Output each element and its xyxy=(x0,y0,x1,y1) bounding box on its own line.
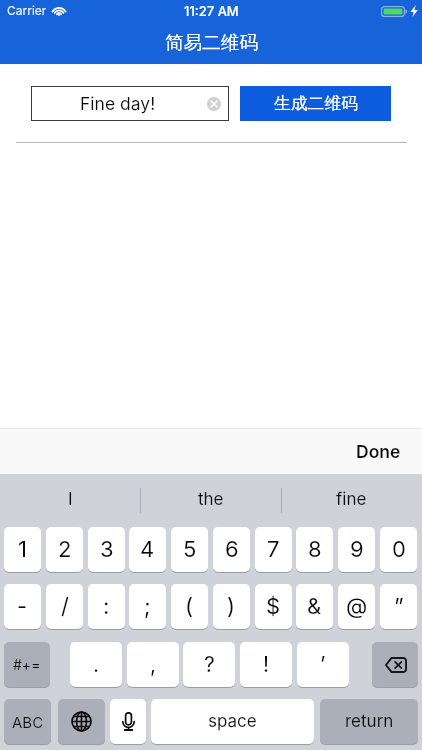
button[interactable]: return xyxy=(320,699,418,745)
button[interactable]: ! xyxy=(240,642,292,688)
button[interactable]: space xyxy=(151,699,314,745)
staticText: 2 xyxy=(58,536,72,563)
button[interactable]: fine xyxy=(281,474,422,527)
staticText: ABC xyxy=(12,713,44,731)
staticText: 11:27 AM xyxy=(184,3,239,19)
button[interactable]: Backspace xyxy=(372,642,418,688)
button[interactable]: / xyxy=(46,584,83,630)
staticText: ’ xyxy=(320,652,326,677)
staticText: ? xyxy=(204,652,215,677)
button[interactable]: Switch keyboard xyxy=(58,699,105,745)
button[interactable]: Dictation xyxy=(110,699,146,745)
staticText: ( xyxy=(185,593,194,620)
button[interactable]: 8 xyxy=(296,527,333,573)
button[interactable]: $ xyxy=(255,584,292,630)
button[interactable]: ” xyxy=(380,584,417,630)
staticText: fine xyxy=(336,489,367,510)
staticText: 6 xyxy=(225,536,239,563)
button[interactable]: Done xyxy=(356,441,401,462)
button[interactable]: 生成二维码 xyxy=(240,86,391,121)
button[interactable]: 0 xyxy=(380,527,417,573)
button[interactable]: : xyxy=(88,584,125,630)
staticText: ! xyxy=(263,652,270,677)
staticText: ; xyxy=(144,593,151,620)
button[interactable]: @ xyxy=(338,584,375,630)
button[interactable]: 9 xyxy=(338,527,375,573)
button[interactable]: Fine day! xyxy=(31,86,229,121)
button[interactable]: ? xyxy=(183,642,235,688)
button[interactable]: - xyxy=(4,584,41,630)
button[interactable]: 5 xyxy=(171,527,208,573)
staticText: 4 xyxy=(140,536,155,563)
button[interactable]: 1 xyxy=(4,527,41,573)
button[interactable]: Clear text xyxy=(207,97,221,111)
staticText: . xyxy=(93,652,100,677)
button[interactable]: ABC xyxy=(4,699,51,745)
staticText: / xyxy=(61,593,69,620)
button[interactable]: ( xyxy=(171,584,208,630)
staticText: Done xyxy=(356,441,401,462)
staticText: 1 xyxy=(18,536,27,563)
button[interactable]: 7 xyxy=(255,527,292,573)
button[interactable]: 6 xyxy=(213,527,250,573)
button[interactable]: ) xyxy=(213,584,250,630)
staticText: @ xyxy=(346,593,368,620)
staticText: Fine day! xyxy=(80,93,156,114)
button[interactable]: ; xyxy=(129,584,166,630)
staticText: ) xyxy=(227,593,236,620)
staticText: the xyxy=(198,489,224,510)
button[interactable]: ’ xyxy=(297,642,349,688)
staticText: 5 xyxy=(183,536,197,563)
staticText: - xyxy=(17,593,28,620)
button[interactable]: the xyxy=(140,474,281,527)
staticText: 8 xyxy=(308,536,322,563)
staticText: Carrier xyxy=(7,3,47,18)
button[interactable]: & xyxy=(296,584,333,630)
button[interactable]: 4 xyxy=(129,527,166,573)
staticText: return xyxy=(345,711,394,732)
staticText: space xyxy=(208,711,257,732)
staticText: 7 xyxy=(267,536,280,563)
staticText: $ xyxy=(266,593,281,620)
staticText: , xyxy=(150,652,157,677)
button[interactable]: , xyxy=(127,642,179,688)
staticText: 简易二维码 xyxy=(165,31,258,54)
staticText: & xyxy=(307,593,322,620)
button[interactable]: 2 xyxy=(46,527,83,573)
staticText: 9 xyxy=(350,536,364,563)
staticText: 0 xyxy=(392,536,406,563)
staticText: I xyxy=(68,489,73,510)
button[interactable]: . xyxy=(70,642,122,688)
staticText: : xyxy=(103,593,110,620)
staticText: #+= xyxy=(13,656,41,673)
button[interactable]: #+= xyxy=(4,642,50,688)
staticText: 生成二维码 xyxy=(274,93,358,114)
staticText: ” xyxy=(394,593,404,620)
staticText: 3 xyxy=(100,536,114,563)
button[interactable]: 3 xyxy=(88,527,125,573)
button[interactable]: I xyxy=(0,474,140,527)
